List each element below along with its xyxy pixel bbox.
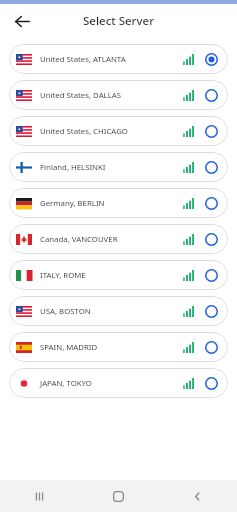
button[interactable]: Finland, HELSINKI — [9, 152, 228, 182]
button[interactable]: Back — [8, 7, 36, 35]
button[interactable]: Home — [79, 480, 158, 512]
button[interactable]: United States, ATLANTA — [9, 44, 228, 74]
button[interactable]: Select server — [204, 340, 219, 355]
button[interactable]: Select server — [204, 196, 219, 211]
staticText: Germany, BERLIN — [40, 198, 183, 209]
button[interactable]: Select server — [204, 268, 219, 283]
button[interactable]: Recent apps — [0, 480, 79, 512]
button[interactable]: JAPAN, TOKYO — [9, 368, 228, 398]
button[interactable]: ITALY, ROME — [9, 260, 228, 290]
button[interactable]: Select server — [204, 160, 219, 175]
button[interactable]: Germany, BERLIN — [9, 188, 228, 218]
button[interactable]: United States, CHICAGO — [9, 116, 228, 146]
button[interactable]: Select server — [204, 88, 219, 103]
staticText: Finland, HELSINKI — [40, 162, 183, 173]
staticText: USA, BOSTON — [40, 306, 183, 317]
button[interactable]: Back — [158, 480, 237, 512]
staticText: Select Server — [83, 13, 154, 29]
staticText: JAPAN, TOKYO — [40, 378, 183, 389]
staticText: Canada, VANCOUVER — [40, 234, 183, 245]
button[interactable]: Select server — [204, 232, 219, 247]
button[interactable]: SPAIN, MADRID — [9, 332, 228, 362]
staticText: ITALY, ROME — [40, 270, 183, 281]
staticText: United States, CHICAGO — [40, 126, 183, 137]
staticText: SPAIN, MADRID — [40, 342, 183, 353]
staticText: United States, ATLANTA — [40, 54, 183, 65]
staticText: United States, DALLAS — [40, 90, 183, 101]
button[interactable]: Select server — [204, 124, 219, 139]
button[interactable]: USA, BOSTON — [9, 296, 228, 326]
button[interactable]: Selected server — [204, 52, 219, 67]
button[interactable]: Select server — [204, 376, 219, 391]
button[interactable]: United States, DALLAS — [9, 80, 228, 110]
button[interactable]: Canada, VANCOUVER — [9, 224, 228, 254]
button[interactable]: Select server — [204, 304, 219, 319]
